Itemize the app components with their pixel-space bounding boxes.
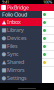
staticText: ▲ — [2, 19, 6, 25]
staticText: ■ — [1, 67, 6, 73]
staticText: ● — [1, 75, 6, 81]
button[interactable]: ● — [0, 50, 42, 58]
staticText: 100% — [43, 0, 52, 5]
button[interactable]: ■ — [0, 26, 42, 34]
button[interactable]: ● — [0, 34, 42, 42]
staticText: Folio Cloud — [2, 11, 27, 18]
staticText: Mirrors — [7, 66, 25, 74]
staticText: Files — [7, 42, 18, 50]
staticText: ● — [1, 35, 6, 41]
staticText: Shared — [7, 58, 24, 66]
staticText: ■ — [1, 43, 6, 49]
staticText: Inbox — [7, 18, 21, 26]
staticText: 9:41 — [2, 0, 9, 5]
button[interactable]: ● — [0, 74, 42, 82]
staticText: Settings — [7, 74, 27, 82]
staticText: Library — [7, 26, 24, 34]
button[interactable]: Menu — [1, 5, 6, 10]
button[interactable]: ■ — [0, 66, 42, 74]
staticText: PixBridge — [7, 4, 29, 11]
staticText: ▲ — [2, 59, 6, 65]
button[interactable]: ▲ — [0, 58, 42, 66]
staticText: ● — [1, 51, 6, 57]
staticText: Sync — [7, 50, 19, 58]
staticText: ■ — [1, 27, 6, 33]
staticText: Devices — [7, 34, 27, 42]
button[interactable]: ■ — [0, 42, 42, 50]
button[interactable]: PixBridge — [7, 4, 29, 11]
button[interactable]: ▲ — [0, 18, 42, 26]
